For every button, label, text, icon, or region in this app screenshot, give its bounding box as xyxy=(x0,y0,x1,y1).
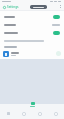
button[interactable] xyxy=(30,5,47,9)
button[interactable]: Settings xyxy=(2,4,20,10)
staticText: Settings xyxy=(7,5,19,9)
button[interactable]: Profile xyxy=(48,108,64,119)
button[interactable]: Toggle on xyxy=(53,31,60,35)
button[interactable]: Toggle on xyxy=(0,29,64,37)
button[interactable]: Add xyxy=(0,49,64,58)
button[interactable] xyxy=(0,21,64,29)
button[interactable]: Home xyxy=(0,108,16,119)
button[interactable]: Add xyxy=(56,51,61,56)
button[interactable]: Toggle on xyxy=(0,13,64,21)
button[interactable]: Discover xyxy=(32,108,48,119)
button[interactable]: Add device xyxy=(30,102,35,107)
button[interactable]: More options xyxy=(58,5,62,9)
button[interactable]: Devices xyxy=(16,108,32,119)
button[interactable]: Toggle on xyxy=(53,15,60,19)
